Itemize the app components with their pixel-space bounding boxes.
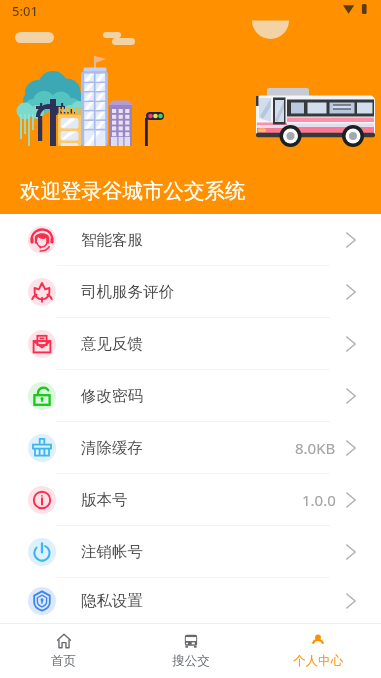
button[interactable]: 首页	[0, 627, 127, 676]
button[interactable]: 清除缓存	[0, 422, 381, 474]
staticText: 智能客服	[81, 230, 143, 250]
staticText: 修改密码	[81, 386, 143, 406]
button[interactable]: 注销帐号	[0, 526, 381, 578]
staticText: 欢迎登录谷城市公交系统	[20, 178, 246, 204]
staticText: 首页	[51, 653, 76, 669]
staticText: 搜公交	[172, 653, 210, 669]
button[interactable]: 智能客服	[0, 214, 381, 266]
staticText: 1.0.0	[302, 490, 336, 510]
staticText: 清除缓存	[81, 438, 143, 458]
button[interactable]: 修改密码	[0, 370, 381, 422]
button[interactable]: 意见反馈	[0, 318, 381, 370]
staticText: 5:01	[12, 2, 38, 20]
staticText: 个人中心	[293, 653, 343, 669]
staticText: 司机服务评价	[81, 282, 174, 302]
staticText: 8.0KB	[295, 438, 336, 458]
button[interactable]: 搜公交	[127, 627, 254, 676]
staticText: 注销帐号	[81, 542, 143, 562]
staticText: 意见反馈	[81, 334, 143, 354]
button[interactable]: 个人中心	[254, 627, 381, 676]
button[interactable]: 隐私设置	[0, 578, 381, 623]
staticText: 隐私设置	[81, 591, 143, 611]
staticText: 版本号	[81, 490, 128, 510]
button[interactable]: 版本号	[0, 474, 381, 526]
button[interactable]: 司机服务评价	[0, 266, 381, 318]
